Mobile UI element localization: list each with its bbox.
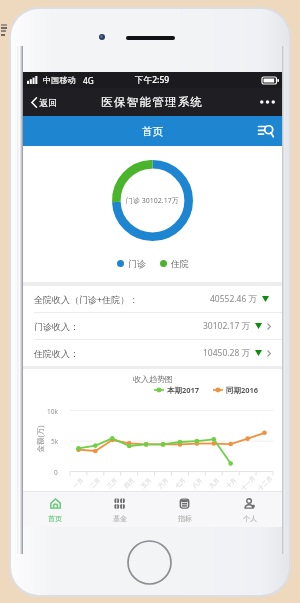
staticText: 中国移动 [43,75,76,85]
staticText: 返回 [39,97,57,108]
staticText: 全院收入（门诊+住院）： [34,293,139,305]
button[interactable]: 全院收入（门诊+住院）： [23,286,282,312]
button[interactable]: 门诊收入： [23,313,282,339]
staticText: 一月 [71,476,85,489]
staticText: 10k [47,407,58,416]
staticText: 5k [51,437,59,446]
staticText: 40552.46 万 [210,293,258,305]
staticText: 住院收入： [34,348,79,359]
staticText: 十一月 [239,474,257,491]
staticText: 下午2:59 [135,74,170,86]
button[interactable]: More options [253,94,282,110]
staticText: 基金 [113,514,127,523]
staticText: 九月 [207,476,221,489]
staticText: 首页 [48,514,62,523]
staticText: 十二月 [256,474,274,491]
button[interactable]: 住院收入： [23,340,282,366]
staticText: 医保智能管理系统 [101,95,204,109]
button[interactable]: 首页 [23,492,87,527]
staticText: 首页 [142,125,163,138]
button[interactable]: 指标 [152,492,217,527]
button[interactable]: 返回 [23,92,67,113]
staticText: 本期2017 [167,385,200,395]
staticText: 二月 [88,476,102,489]
staticText: 个人 [243,514,257,523]
staticText: 八月 [190,476,204,489]
staticText: 门诊 30102.17万 [126,196,179,206]
staticText: 七月 [173,476,187,489]
staticText: 收入趋势图 [133,374,173,384]
staticText: 十月 [224,476,238,489]
staticText: 同期2016 [226,385,259,395]
button[interactable]: Search [251,118,282,144]
button[interactable]: 个人 [217,492,282,527]
staticText: 四月 [122,476,136,489]
staticText: 金额(万) [34,425,44,452]
staticText: 4G [83,75,94,86]
staticText: 30102.17 万 [203,320,251,332]
staticText: 门诊收入： [34,321,79,332]
staticText: 门诊 [128,258,146,269]
staticText: 10450.28 万 [203,347,251,359]
staticText: 0 [54,468,58,477]
staticText: 六月 [156,476,170,489]
staticText: 五月 [139,476,153,489]
staticText: 三月 [105,476,119,489]
button[interactable]: 基金 [87,492,152,527]
staticText: 指标 [178,514,192,523]
staticText: 住院 [171,258,189,269]
